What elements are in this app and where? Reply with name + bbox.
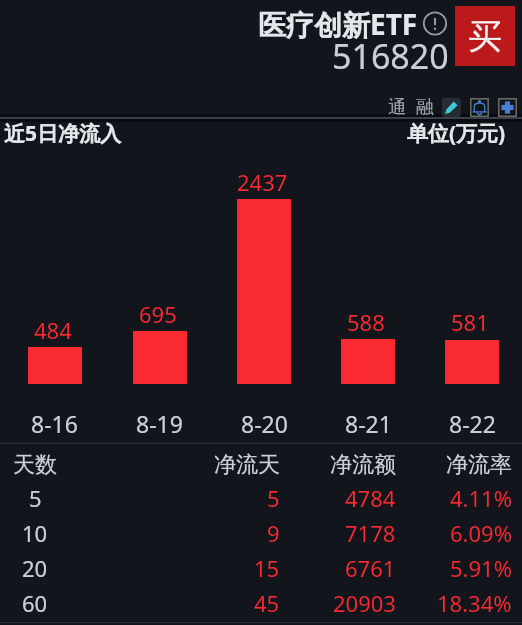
staticText: 买 xyxy=(468,15,502,58)
staticText: 4784 xyxy=(345,483,396,513)
staticText: 融 xyxy=(416,96,434,119)
staticText: 60 xyxy=(22,588,48,618)
button[interactable]: Alerts xyxy=(470,98,489,117)
staticText: 6.09% xyxy=(450,518,512,548)
staticText: 7178 xyxy=(345,518,396,548)
staticText: 8-20 xyxy=(241,408,288,439)
staticText: 516820 xyxy=(332,33,449,79)
button[interactable]: Add to watchlist xyxy=(498,98,517,117)
staticText: 695 xyxy=(139,299,177,329)
staticText: 45 xyxy=(254,588,280,618)
button[interactable]: 10 xyxy=(0,515,522,550)
staticText: 2437 xyxy=(237,167,288,197)
staticText: 588 xyxy=(347,307,385,337)
staticText: 20903 xyxy=(333,588,396,618)
staticText: 8-19 xyxy=(136,408,183,439)
staticText: 581 xyxy=(451,307,489,337)
staticText: 6761 xyxy=(345,553,396,583)
staticText: 单位(万元) xyxy=(407,119,506,146)
staticText: 8-22 xyxy=(449,408,496,439)
staticText: 医疗创新ETF xyxy=(258,5,418,43)
staticText: 9 xyxy=(267,518,280,548)
staticText: 近5日净流入 xyxy=(4,119,122,146)
staticText: 4.11% xyxy=(450,483,512,513)
button[interactable]: 天数 xyxy=(0,441,522,480)
staticText: 净流额 xyxy=(330,451,396,479)
staticText: 20 xyxy=(22,553,48,583)
staticText: 8-21 xyxy=(345,408,392,439)
button[interactable]: 20 xyxy=(0,550,522,585)
staticText: 净流率 xyxy=(446,451,512,479)
staticText: 5 xyxy=(267,483,280,513)
staticText: 484 xyxy=(34,315,72,345)
button[interactable]: Edit xyxy=(442,98,461,117)
staticText: 5.91% xyxy=(450,553,512,583)
button[interactable]: 5 xyxy=(0,480,522,515)
staticText: 通 xyxy=(388,96,406,119)
staticText: 10 xyxy=(22,518,48,548)
staticText: 15 xyxy=(254,553,280,583)
button[interactable]: 60 xyxy=(0,585,522,620)
staticText: 5 xyxy=(29,483,42,513)
staticText: 天数 xyxy=(13,451,57,479)
staticText: 18.34% xyxy=(437,588,512,618)
staticText: 净流天 xyxy=(214,451,280,479)
button[interactable]: 买 xyxy=(455,6,515,66)
staticText: 8-16 xyxy=(31,408,78,439)
